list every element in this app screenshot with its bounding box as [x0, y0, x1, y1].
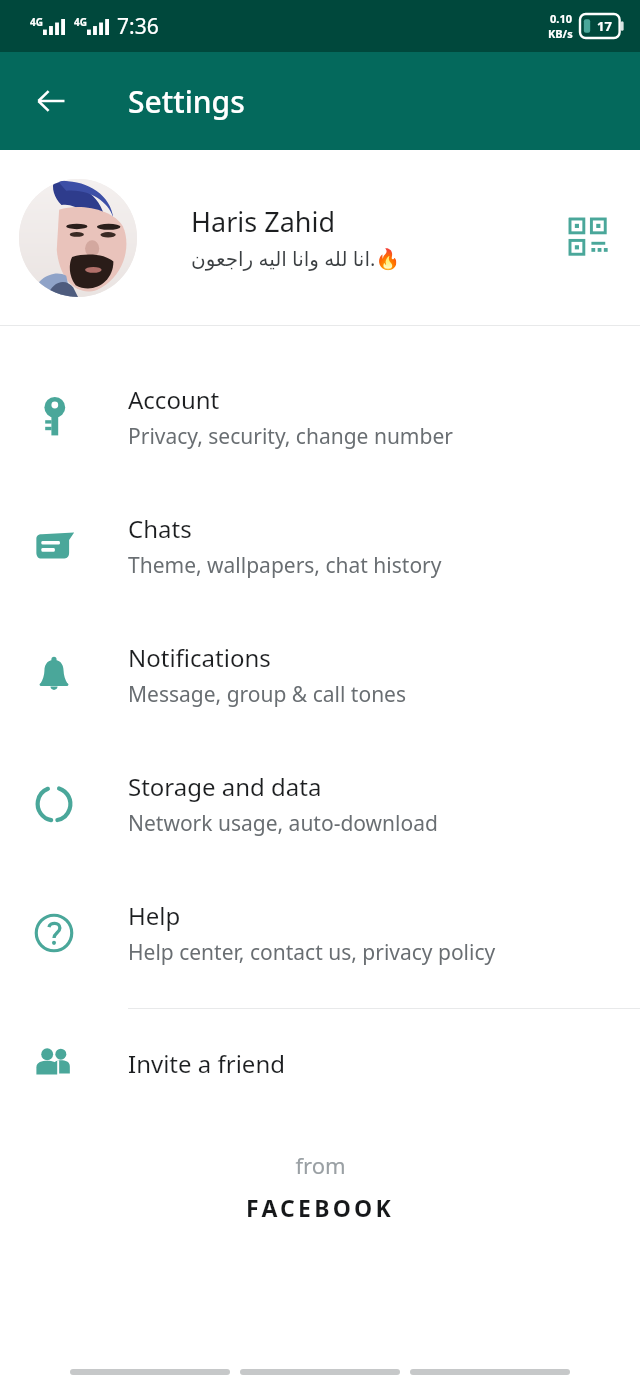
staticText: انا لله وانا اليه راجعون.🔥: [191, 245, 401, 272]
staticText: 17: [597, 17, 612, 35]
staticText: 4G: [74, 15, 87, 29]
staticText: Haris Zahid: [191, 203, 336, 240]
staticText: Theme, wallpapers, chat history: [128, 551, 442, 580]
staticText: Privacy, security, change number: [128, 422, 453, 451]
button[interactable]: Back: [20, 70, 82, 132]
staticText: Help center, contact us, privacy policy: [128, 938, 496, 967]
staticText: Notifications: [128, 641, 271, 674]
staticText: 0.10: [550, 11, 572, 26]
staticText: Help: [128, 899, 181, 932]
button[interactable]: Haris Zahid: [0, 150, 640, 325]
staticText: Invite a friend: [128, 1047, 285, 1080]
button[interactable]: Chats: [0, 481, 640, 610]
staticText: 7:36: [117, 12, 159, 41]
button[interactable]: Invite a friend: [0, 1020, 640, 1106]
button[interactable]: Help: [0, 868, 640, 997]
button[interactable]: QR code: [560, 209, 618, 267]
staticText: Network usage, auto-download: [128, 809, 438, 838]
button[interactable]: Notifications: [0, 610, 640, 739]
staticText: Settings: [128, 81, 245, 122]
staticText: from: [295, 1150, 346, 1180]
staticText: KB/s: [548, 26, 573, 41]
staticText: FACEBOOK: [246, 1192, 394, 1223]
button[interactable]: Account: [0, 352, 640, 481]
staticText: Storage and data: [128, 770, 322, 803]
staticText: Account: [128, 383, 220, 416]
button[interactable]: Storage and data: [0, 739, 640, 868]
staticText: 4G: [30, 15, 43, 29]
staticText: Message, group & call tones: [128, 680, 407, 709]
staticText: Chats: [128, 512, 192, 545]
